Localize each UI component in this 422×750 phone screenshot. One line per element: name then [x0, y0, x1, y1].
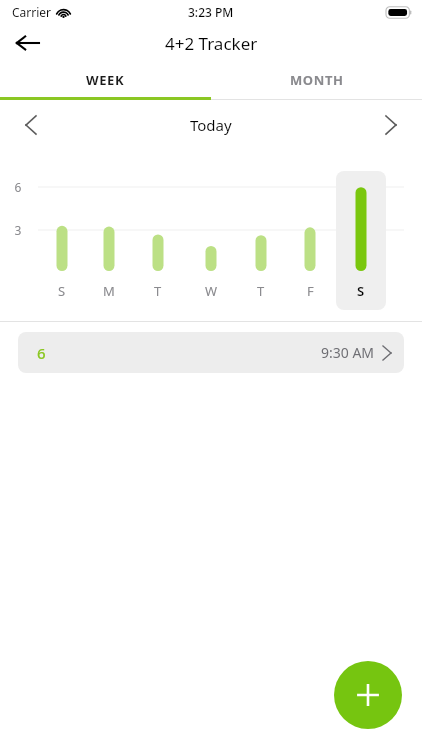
- staticText: 6: [37, 343, 46, 363]
- button[interactable]: Next week: [374, 108, 408, 142]
- staticText: 3: [10, 222, 26, 238]
- button[interactable]: M: [91, 282, 127, 304]
- staticText: S: [357, 282, 365, 300]
- staticText: T: [154, 282, 162, 300]
- button[interactable]: Add entry: [334, 661, 402, 729]
- button[interactable]: 6: [18, 332, 404, 373]
- button[interactable]: S: [44, 282, 80, 304]
- staticText: T: [257, 282, 265, 300]
- staticText: Today: [190, 115, 232, 135]
- button[interactable]: Previous week: [14, 108, 48, 142]
- staticText: S: [58, 282, 66, 300]
- button[interactable]: WEEK: [0, 62, 211, 97]
- staticText: W: [205, 282, 218, 300]
- button[interactable]: Back: [8, 24, 46, 62]
- button[interactable]: MONTH: [211, 62, 422, 97]
- staticText: 3:23 PM: [188, 4, 234, 20]
- staticText: M: [103, 282, 115, 300]
- staticText: 4+2 Tracker: [165, 32, 258, 55]
- staticText: 6: [10, 179, 26, 195]
- staticText: Carrier: [12, 4, 52, 20]
- button[interactable]: T: [243, 282, 279, 304]
- button[interactable]: F: [292, 282, 328, 304]
- staticText: WEEK: [86, 71, 125, 89]
- button[interactable]: T: [140, 282, 176, 304]
- button[interactable]: W: [193, 282, 229, 304]
- button[interactable]: S: [343, 282, 379, 304]
- staticText: MONTH: [290, 71, 344, 89]
- staticText: 9:30 AM: [321, 343, 375, 362]
- staticText: F: [307, 282, 314, 300]
